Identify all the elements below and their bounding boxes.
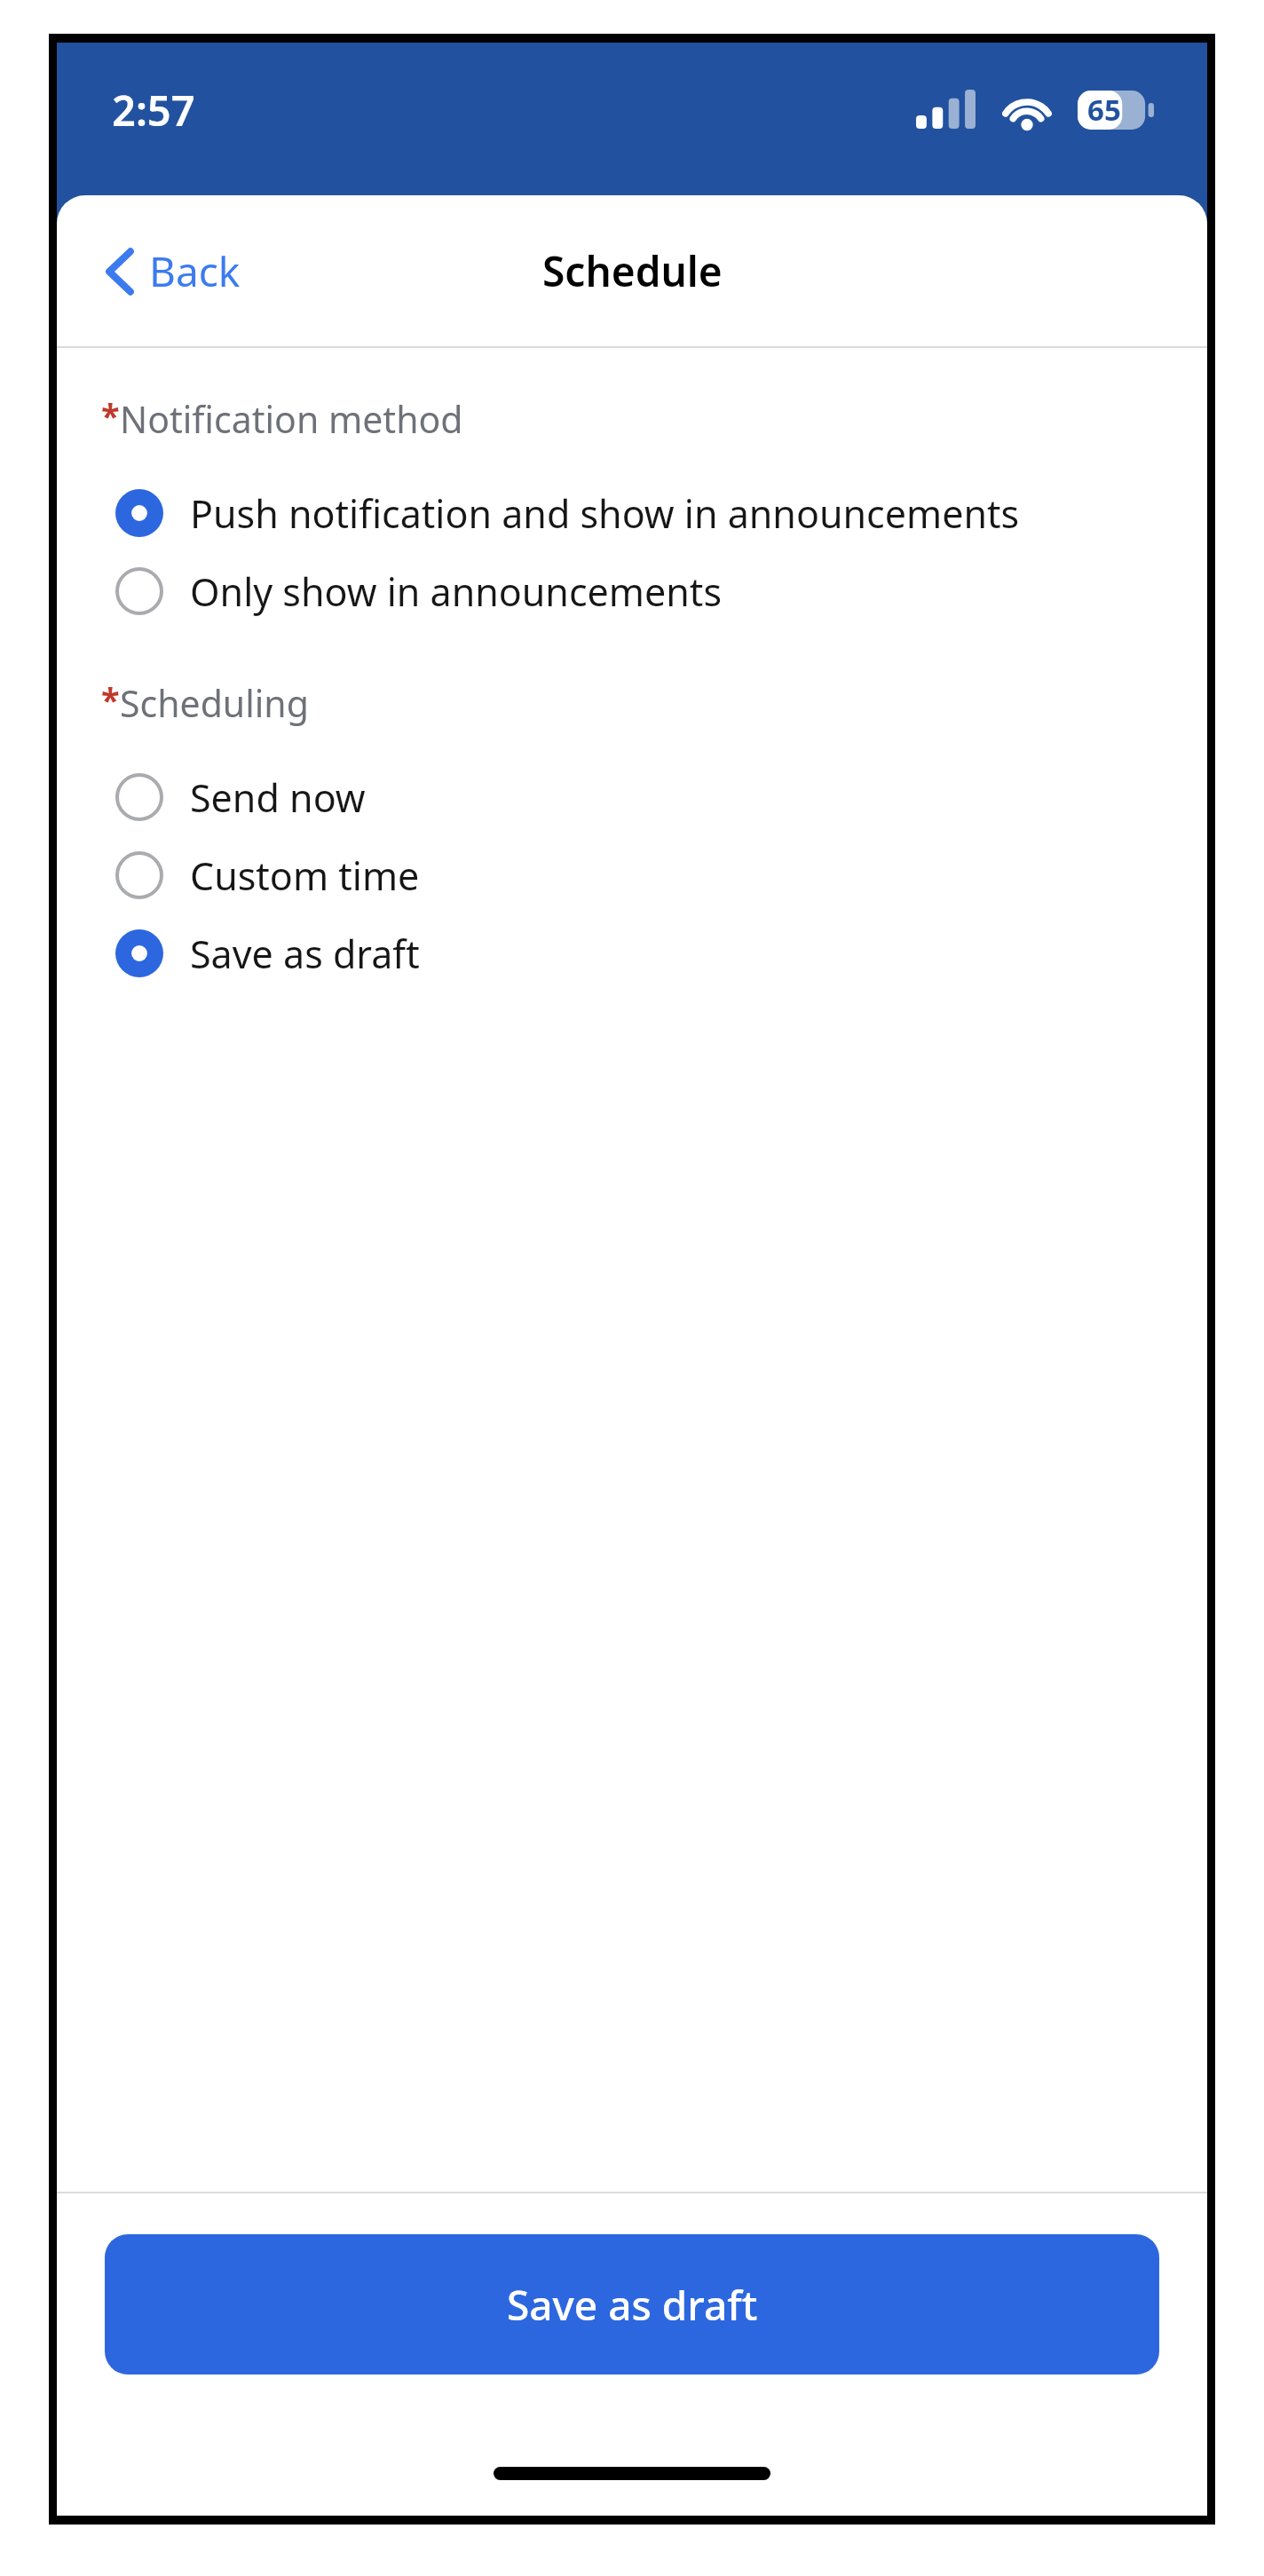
button[interactable]: Back	[92, 233, 253, 310]
button[interactable]: Only show in announcements	[57, 559, 1207, 623]
staticText: *	[101, 392, 120, 439]
staticText: 2:57	[112, 82, 195, 138]
staticText: Save as draft	[507, 2277, 758, 2333]
staticText: 65	[1087, 90, 1121, 130]
button[interactable]: Save as draft	[105, 2234, 1159, 2375]
staticText: Back	[149, 243, 241, 299]
staticText: Schedule	[542, 243, 723, 299]
staticText: Save as draft	[190, 928, 420, 980]
staticText: Push notification and show in announceme…	[190, 487, 1020, 540]
staticText: *	[101, 676, 120, 723]
staticText: Custom time	[190, 849, 420, 902]
staticText: Only show in announcements	[190, 565, 722, 618]
button[interactable]: Custom time	[57, 843, 1207, 907]
button[interactable]: Save as draft	[57, 921, 1207, 985]
staticText: Scheduling	[120, 678, 309, 728]
staticText: Notification method	[120, 394, 463, 444]
button[interactable]: Push notification and show in announceme…	[57, 481, 1207, 545]
staticText: Send now	[190, 771, 366, 824]
button[interactable]: Send now	[57, 765, 1207, 829]
